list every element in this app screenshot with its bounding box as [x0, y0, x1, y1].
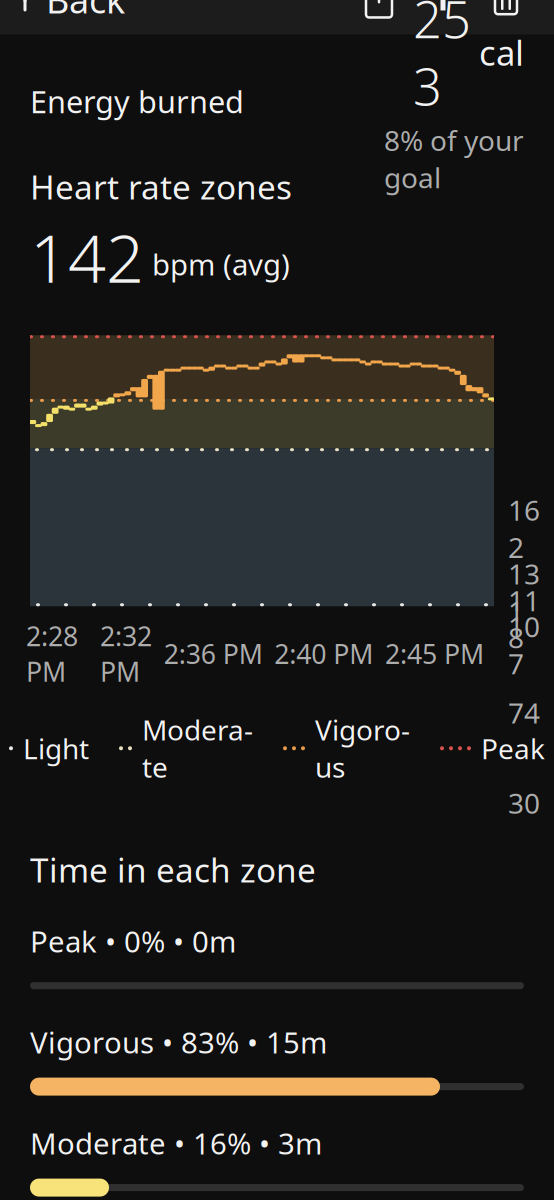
staticText: 253 [413, 0, 471, 120]
staticText: 118 [508, 582, 540, 656]
staticText: Light [23, 730, 89, 767]
staticText: Vigorous [315, 711, 410, 785]
staticText: 2:28 PM [26, 618, 78, 689]
staticText: Vigorous • 83% • 15m [30, 1023, 327, 1062]
staticText: 162 [508, 491, 540, 566]
staticText: 74 [508, 694, 540, 731]
staticText: 2:40 PM [274, 636, 373, 671]
staticText: 30 [508, 784, 540, 822]
staticText: 2:45 PM [385, 636, 484, 671]
staticText: Moderate • 16% • 3m [30, 1124, 322, 1163]
staticText: Heart rate zones [30, 164, 292, 209]
staticText: 142 [30, 213, 144, 301]
staticText: Moderate [142, 711, 253, 785]
staticText: 2:32 PM [100, 618, 152, 689]
staticText: Time in each zone [30, 847, 316, 892]
staticText: 131 [508, 555, 540, 629]
staticText: Energy burned [30, 81, 244, 122]
staticText: bpm (avg) [152, 244, 290, 283]
staticText: Back [46, 0, 125, 23]
button[interactable]: Edit [410, 0, 476, 26]
staticText: 8% of your goal [384, 122, 524, 196]
staticText: 107 [508, 608, 540, 682]
staticText: Peak [481, 730, 545, 767]
button[interactable]: Delete [476, 0, 536, 26]
staticText: 2:36 PM [164, 636, 263, 671]
staticText: Peak • 0% • 0m [30, 922, 236, 961]
button[interactable]: Share [348, 0, 410, 27]
button[interactable]: Back [0, 0, 125, 33]
staticText: cal [479, 29, 524, 75]
